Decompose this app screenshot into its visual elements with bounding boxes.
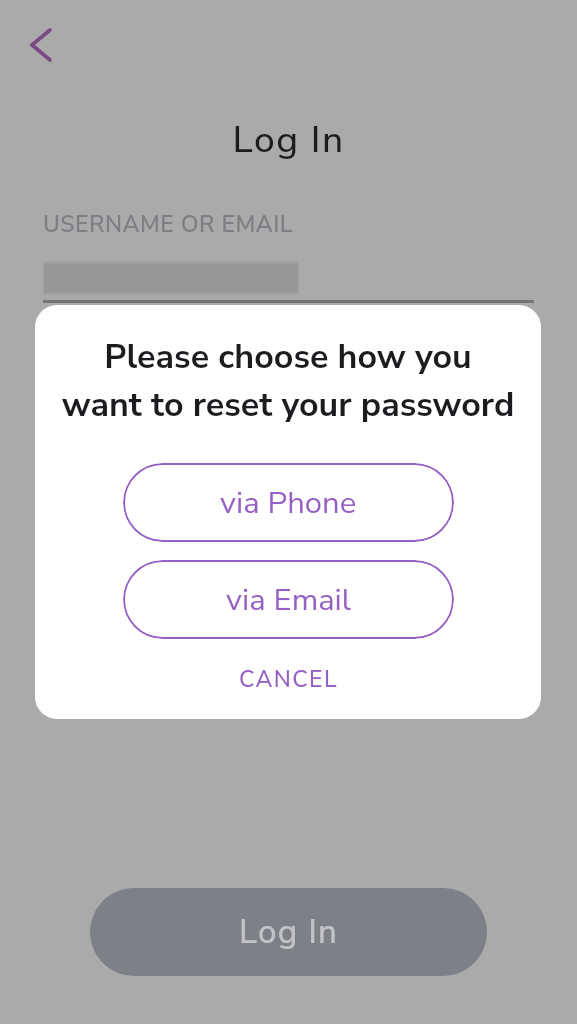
staticText: Please choose how you want to reset your…: [35, 334, 541, 428]
staticText: USERNAME OR EMAIL: [43, 209, 293, 240]
button[interactable]: via Email: [123, 560, 454, 639]
staticText: Log In: [0, 115, 577, 165]
staticText: Log In: [239, 910, 339, 955]
staticText: CANCEL: [239, 664, 338, 695]
button[interactable]: via Phone: [123, 463, 454, 542]
staticText: via Phone: [220, 482, 357, 524]
button[interactable]: CANCEL: [211, 655, 366, 704]
staticText: via Email: [226, 579, 351, 621]
button[interactable]: Log In: [90, 888, 487, 976]
button[interactable]: Back: [12, 16, 70, 74]
